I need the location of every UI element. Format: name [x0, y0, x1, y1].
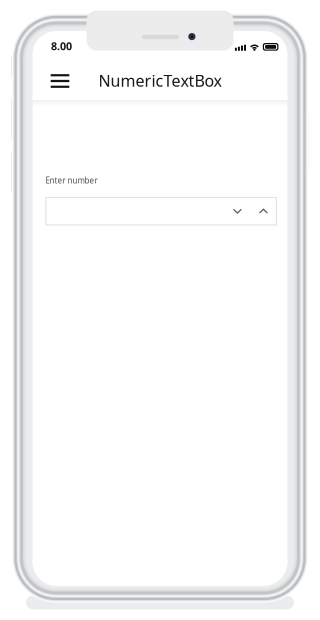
staticText: NumericTextBox [98, 70, 221, 91]
staticText: Enter number [45, 175, 97, 186]
button[interactable]: Menu [45, 66, 75, 96]
button[interactable]: Decrement value [224, 197, 250, 225]
button[interactable]: Increment value [250, 197, 276, 225]
staticText: 8.00 [51, 39, 72, 53]
